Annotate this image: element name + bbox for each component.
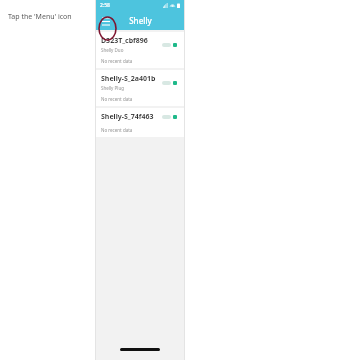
staticText: Shelly Plug: [101, 85, 125, 91]
staticText: Shelly Duo: [101, 47, 124, 53]
button[interactable]: Toggle device power: [160, 113, 179, 121]
button[interactable]: D323T_cbf896: [96, 32, 184, 68]
staticText: No recent data: [101, 127, 133, 133]
staticText: No recent data: [101, 96, 133, 102]
button[interactable]: Shelly-S_74f463: [96, 108, 184, 137]
staticText: Shelly-S_2a401b: [101, 74, 156, 84]
staticText: 2:58: [100, 2, 110, 9]
button[interactable]: Toggle device power: [160, 79, 179, 87]
button[interactable]: Toggle device power: [160, 41, 179, 49]
staticText: Tap the 'Menu' icon: [8, 12, 72, 22]
staticText: No recent data: [101, 58, 133, 64]
button[interactable]: Menu: [100, 15, 112, 27]
staticText: Shelly: [129, 15, 152, 26]
staticText: D323T_cbf896: [101, 36, 148, 46]
staticText: Shelly-S_74f463: [101, 112, 154, 122]
button[interactable]: Shelly-S_2a401b: [96, 70, 184, 106]
